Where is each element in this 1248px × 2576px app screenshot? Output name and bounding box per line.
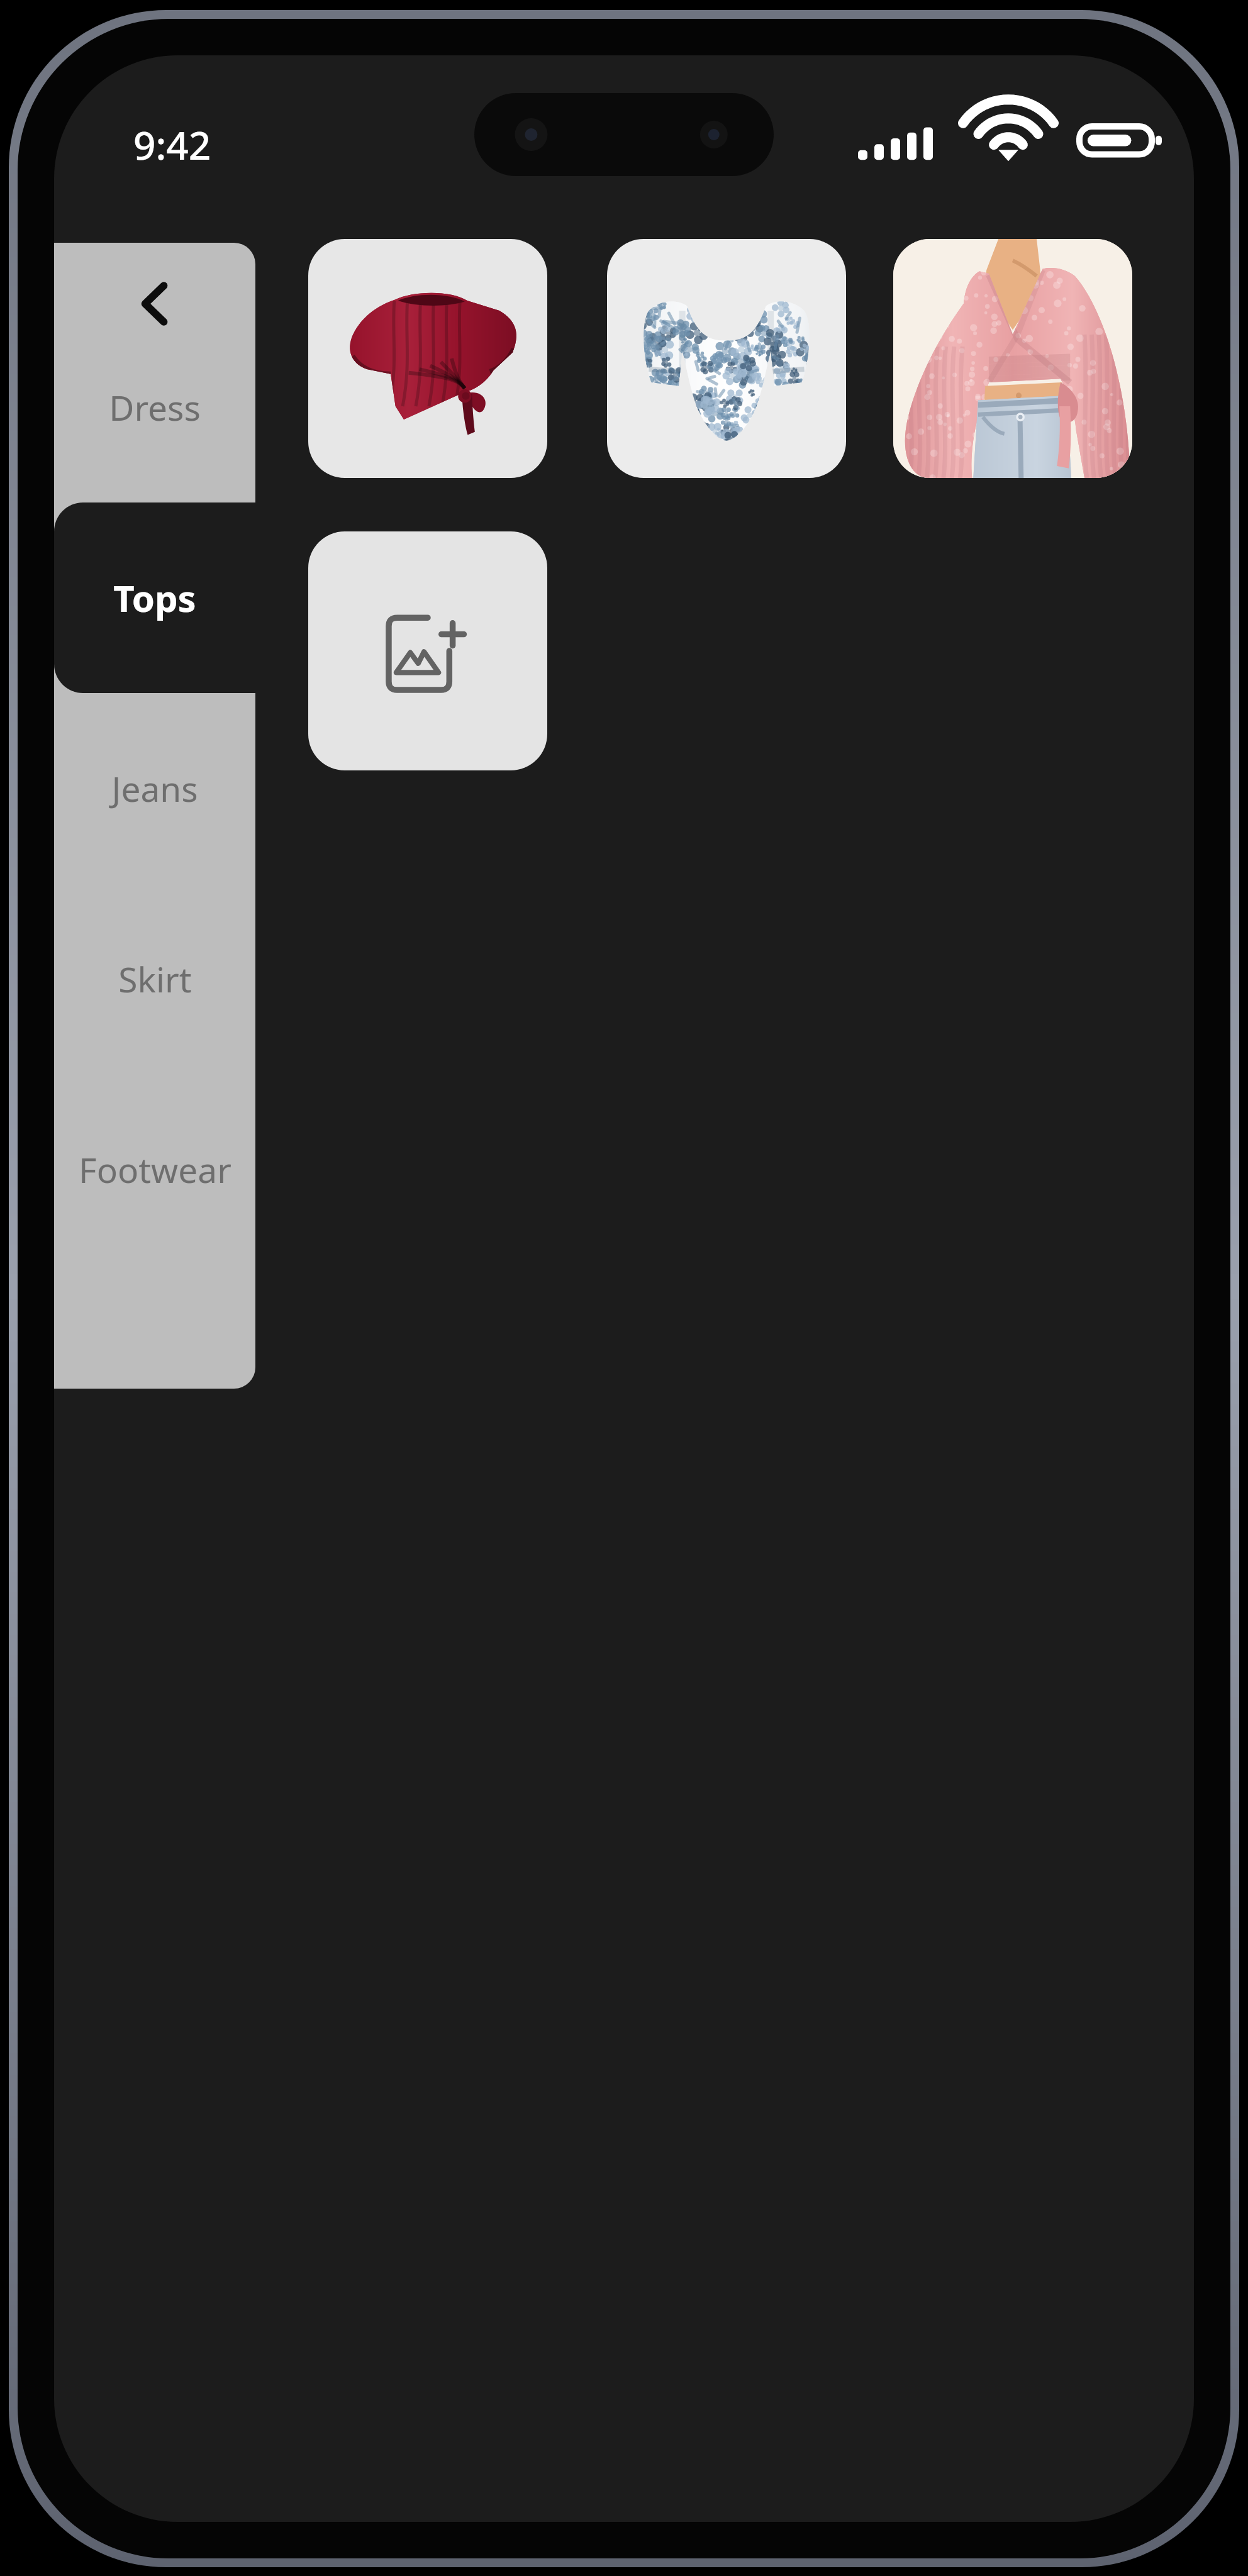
button[interactable]: Jeans [54,693,255,884]
button[interactable]: Back [54,244,255,364]
button[interactable]: Pink wrap blouse [893,239,1132,478]
button[interactable]: Skirt [54,884,255,1074]
staticText: Dress [109,384,201,431]
button[interactable]: Blue floral puff sleeve top [607,239,846,478]
staticText: Jeans [111,765,198,812]
staticText: Footwear [79,1146,231,1193]
button[interactable]: Add image [308,531,547,770]
button[interactable]: Tops [54,502,255,693]
button[interactable]: Dress [54,312,255,502]
staticText: 9:42 [133,118,211,171]
staticText: Tops [113,573,196,623]
button[interactable]: Footwear [54,1074,255,1265]
staticText: Skirt [118,955,192,1002]
button[interactable]: Red tie-front crop top [308,239,547,478]
